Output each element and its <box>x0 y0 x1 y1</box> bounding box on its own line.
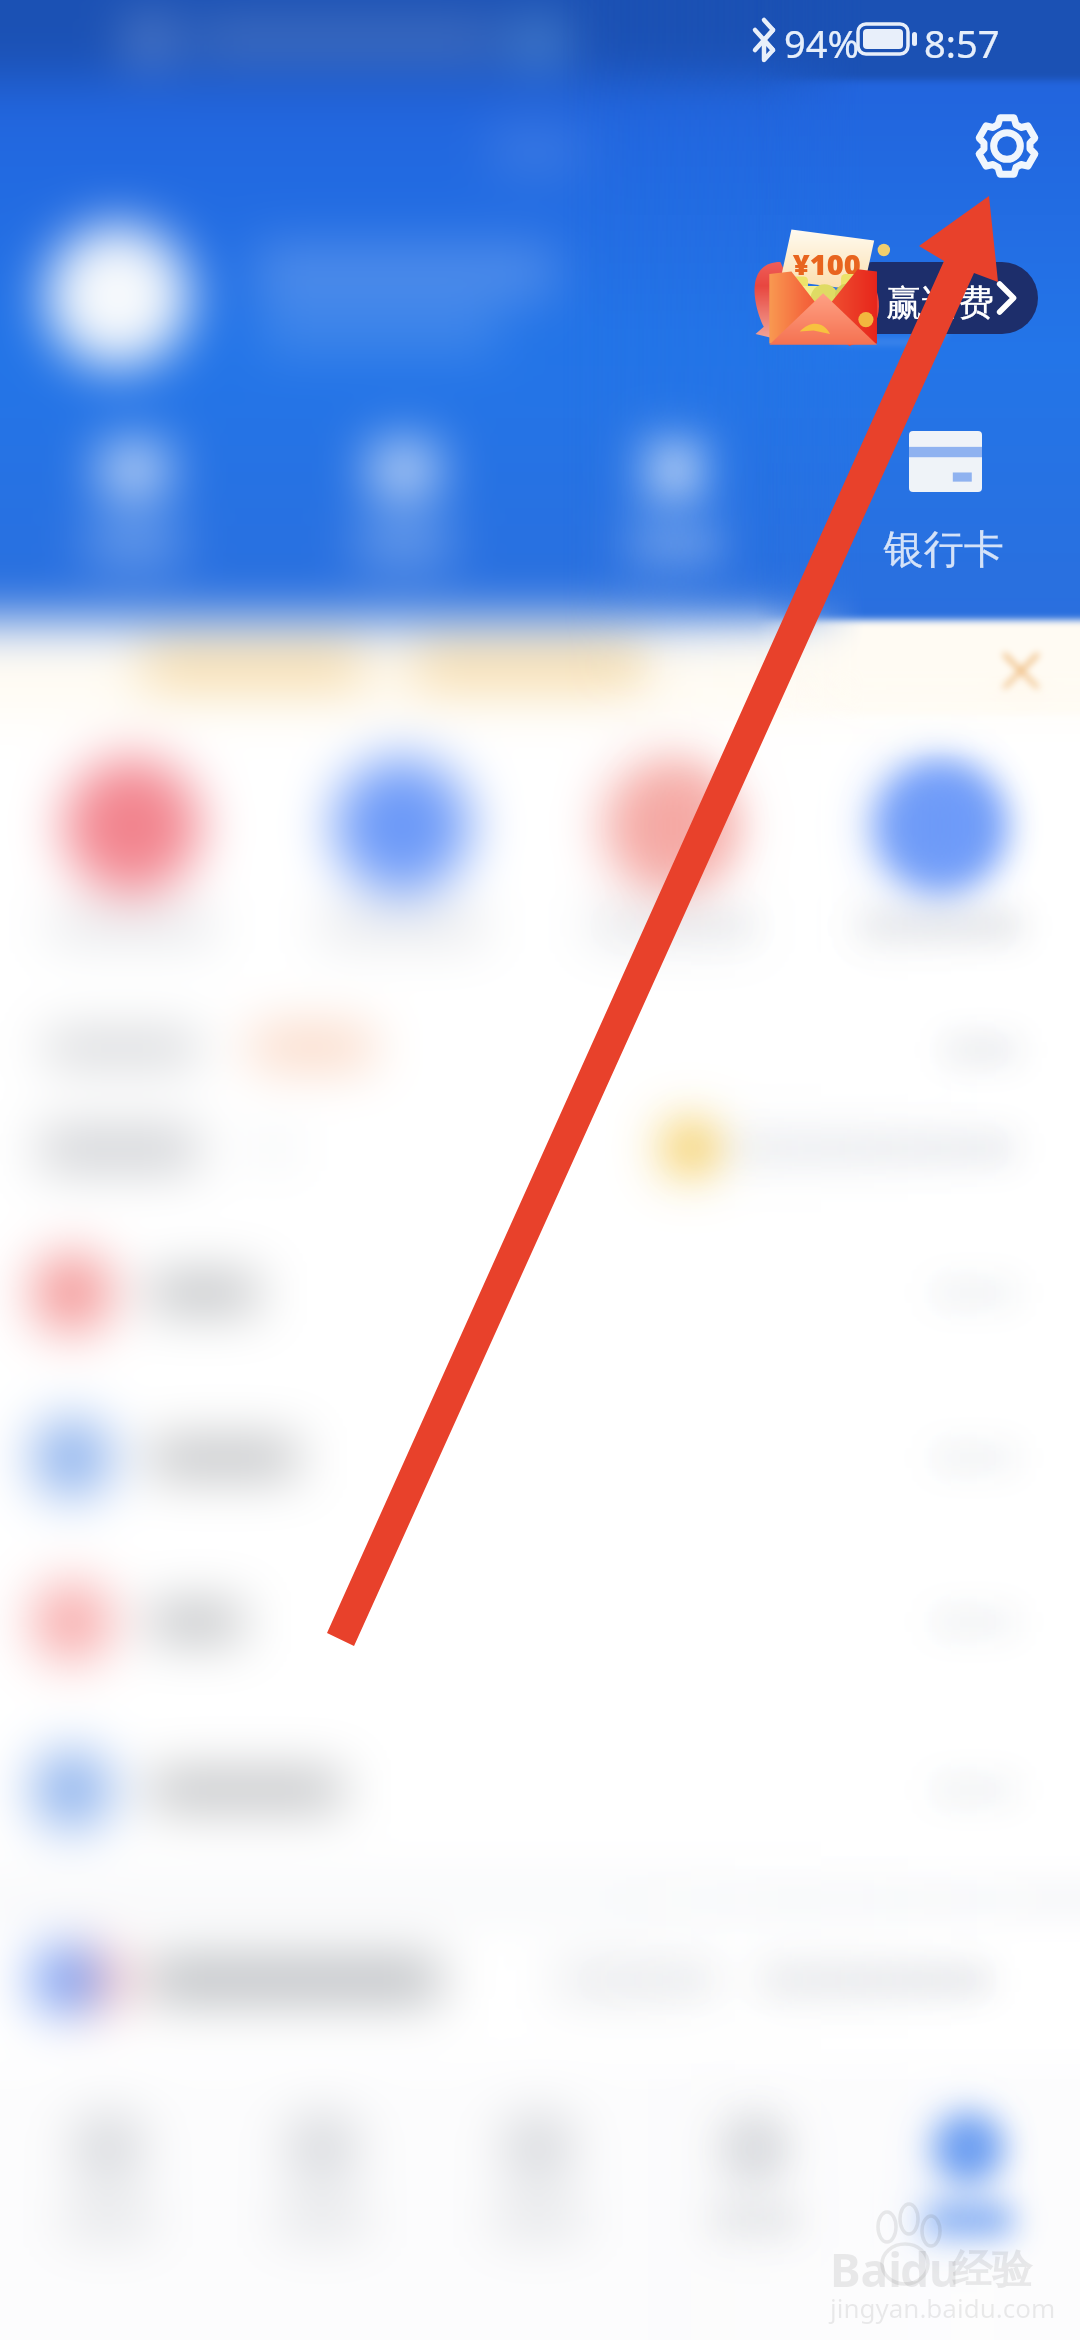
button[interactable]: 分类三 <box>572 744 772 954</box>
button[interactable]: 银行卡 <box>878 420 1014 580</box>
button[interactable]: 列表项四 <box>0 1708 1080 1876</box>
button[interactable]: 零钱 <box>66 420 202 580</box>
button[interactable]: 个人资料 <box>24 210 624 380</box>
button[interactable]: 余额 <box>336 420 472 580</box>
button[interactable]: 分类二 <box>302 744 502 954</box>
button[interactable]: 列表项二 <box>0 1380 1080 1544</box>
button[interactable]: 推荐 <box>0 1918 1080 2058</box>
button[interactable]: 卡包 <box>606 420 742 580</box>
button[interactable]: 理财 <box>222 2080 422 2280</box>
button[interactable]: Settings <box>968 108 1048 188</box>
button[interactable]: 首页 <box>8 2080 208 2280</box>
button[interactable]: 列表项三 <box>0 1544 1080 1708</box>
button[interactable]: 消息 <box>654 2080 854 2280</box>
button[interactable]: 分类四 <box>840 744 1040 954</box>
button[interactable]: 我的 <box>868 2080 1068 2280</box>
button[interactable]: 列表项一 <box>0 1220 1080 1380</box>
button[interactable]: 生活 <box>438 2080 638 2280</box>
button[interactable]: 分类一 <box>32 744 232 954</box>
button[interactable]: 赢话费 <box>744 226 1044 346</box>
button[interactable]: 关闭 <box>988 638 1054 704</box>
button[interactable]: 我的资产 <box>0 990 1080 1210</box>
